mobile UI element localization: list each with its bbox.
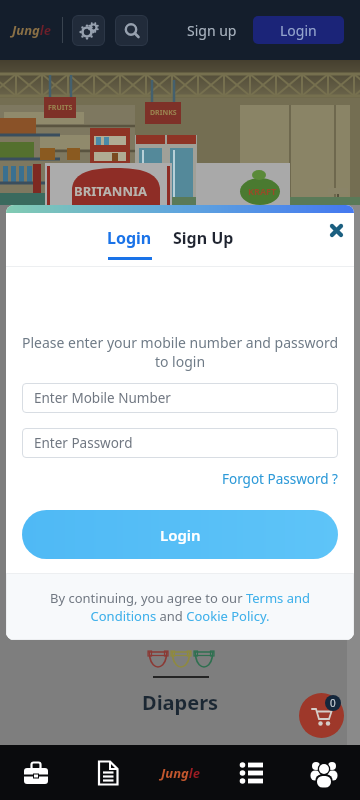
staticText: BRITANNIA [74,182,148,200]
staticText: Please enter your mobile number and pass… [16,333,344,371]
button[interactable] [326,220,346,240]
button[interactable]: Sign up [187,21,237,40]
staticText: Login [160,525,201,545]
button[interactable]: Login [22,510,338,559]
button[interactable]: Jungle [144,745,216,800]
button[interactable] [0,745,72,800]
staticText: Enter Mobile Number [34,389,171,407]
staticText: Login [280,21,317,40]
button[interactable]: Enter Mobile Number [22,383,338,413]
button[interactable] [115,15,148,46]
button[interactable] [216,745,288,800]
staticText: Enter Password [34,434,133,452]
button[interactable]: Sign Up [173,227,234,249]
button[interactable] [299,693,344,738]
button[interactable]: Jungle [12,21,51,39]
staticText: Diapers [142,689,219,716]
button[interactable]: Diapers [142,649,219,716]
button[interactable] [288,745,360,800]
staticText: DRINKS [150,108,177,118]
button[interactable]: By continuing, you agree to our Terms an… [36,589,324,625]
button[interactable] [72,745,144,800]
button[interactable]: Enter Password [22,428,338,458]
staticText: Login [107,227,152,249]
staticText: Jungle [161,764,200,782]
staticText: KRAFT [248,185,277,197]
button[interactable] [72,15,105,46]
staticText: Jungle [12,21,51,39]
button[interactable]: Forgot Password ? [222,470,338,488]
button[interactable]: Login [107,227,152,260]
staticText: Forgot Password ? [222,470,338,488]
staticText: Sign Up [173,227,234,249]
button[interactable]: Login [253,16,344,44]
staticText: 0 [330,696,336,710]
staticText: Sign up [187,21,237,40]
staticText: FRUITS [48,103,73,113]
